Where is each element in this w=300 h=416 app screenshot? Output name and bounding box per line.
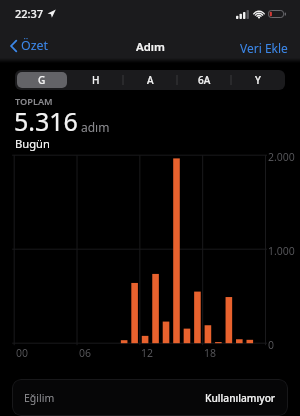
button[interactable]: Özet	[8, 35, 50, 56]
staticText: 0	[268, 338, 275, 352]
staticText: 18	[204, 346, 217, 360]
staticText: Y	[255, 73, 261, 87]
button[interactable]: 6A	[179, 72, 229, 88]
staticText: 00	[16, 346, 29, 360]
button[interactable]: Eğilim	[12, 379, 288, 416]
button[interactable]: G	[17, 72, 67, 88]
staticText: Kullanılamıyor	[205, 391, 276, 405]
staticText: H	[92, 73, 100, 87]
staticText: 12	[141, 346, 154, 360]
staticText: Eğilim	[24, 391, 55, 405]
staticText: Adım	[136, 39, 165, 55]
button[interactable]: Y	[233, 72, 283, 88]
button[interactable]: H	[71, 72, 121, 88]
staticText: A	[147, 73, 154, 87]
staticText: Özet	[21, 37, 48, 54]
staticText: 1.000	[268, 244, 295, 258]
other: Battery	[268, 10, 286, 18]
staticText: Veri Ekle	[240, 40, 288, 56]
staticText: 22:37	[15, 6, 44, 21]
staticText: G	[38, 73, 46, 87]
staticText: 2.000	[268, 150, 295, 164]
button[interactable]: A	[125, 72, 175, 88]
other: Cellular signal	[236, 10, 249, 19]
staticText: 5.316	[14, 104, 78, 138]
staticText: 6A	[198, 73, 211, 87]
staticText: TOPLAM	[15, 95, 53, 108]
staticText: 06	[79, 346, 92, 360]
staticText: adım	[81, 119, 110, 135]
staticText: Bugün	[15, 136, 50, 151]
button[interactable]: Veri Ekle	[239, 39, 289, 57]
other: Wi-Fi	[253, 9, 265, 18]
